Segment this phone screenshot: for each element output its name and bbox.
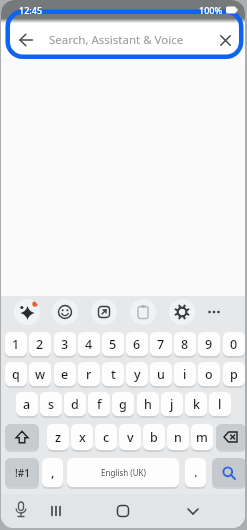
button[interactable]: b bbox=[143, 424, 165, 450]
button[interactable]: 5 bbox=[102, 332, 124, 356]
staticText: d bbox=[71, 396, 79, 413]
staticText: w bbox=[35, 366, 46, 383]
button[interactable]: d bbox=[64, 392, 86, 416]
staticText: !#1 bbox=[15, 466, 30, 480]
staticText: y bbox=[134, 366, 141, 383]
staticText: v bbox=[127, 429, 134, 446]
staticText: j bbox=[170, 396, 174, 413]
staticText: h bbox=[144, 396, 152, 413]
button[interactable] bbox=[44, 499, 68, 523]
button[interactable]: q bbox=[5, 362, 27, 386]
staticText: 7 bbox=[157, 336, 165, 353]
button[interactable] bbox=[201, 299, 227, 325]
staticText: 9 bbox=[205, 336, 213, 353]
button[interactable]: g bbox=[112, 392, 134, 416]
staticText: b bbox=[150, 429, 158, 446]
button[interactable]: z bbox=[47, 424, 69, 450]
button[interactable]: t bbox=[102, 362, 124, 386]
button[interactable]: x bbox=[71, 424, 93, 450]
staticText: English (UK) bbox=[101, 467, 146, 478]
button[interactable]: Search, Assistant & Voice bbox=[49, 23, 205, 57]
staticText: s bbox=[48, 396, 55, 413]
staticText: t bbox=[111, 366, 116, 383]
button[interactable]: f bbox=[88, 392, 110, 416]
button[interactable] bbox=[212, 458, 245, 487]
button[interactable]: u bbox=[150, 362, 172, 386]
button[interactable]: 8 bbox=[174, 332, 196, 356]
button[interactable]: 3 bbox=[54, 332, 76, 356]
staticText: 12:45 bbox=[19, 4, 43, 16]
button[interactable]: 4 bbox=[78, 332, 100, 356]
button[interactable]: s bbox=[40, 392, 62, 416]
button[interactable]: v bbox=[119, 424, 141, 450]
staticText: r bbox=[86, 366, 92, 383]
button[interactable] bbox=[91, 299, 117, 325]
button[interactable] bbox=[181, 499, 205, 523]
staticText: 6 bbox=[133, 336, 141, 353]
staticText: n bbox=[174, 429, 182, 446]
button[interactable]: 1 bbox=[5, 332, 27, 356]
button[interactable]: r bbox=[78, 362, 100, 386]
staticText: 1 bbox=[12, 336, 20, 353]
staticText: m bbox=[196, 429, 208, 446]
staticText: Search, Assistant & Voice bbox=[49, 32, 184, 48]
button[interactable]: 0 bbox=[223, 332, 245, 356]
button[interactable] bbox=[9, 498, 33, 522]
button[interactable]: a bbox=[16, 392, 38, 416]
button[interactable] bbox=[205, 23, 245, 57]
button[interactable]: i bbox=[174, 362, 196, 386]
button[interactable]: m bbox=[191, 424, 213, 450]
staticText: e bbox=[61, 366, 69, 383]
button[interactable] bbox=[14, 299, 40, 325]
button[interactable]: p bbox=[223, 362, 245, 386]
staticText: . bbox=[194, 464, 198, 481]
staticText: 100% bbox=[199, 4, 223, 16]
button[interactable]: w bbox=[29, 362, 51, 386]
staticText: f bbox=[97, 396, 102, 413]
button[interactable]: 7 bbox=[150, 332, 172, 356]
button[interactable]: 9 bbox=[198, 332, 220, 356]
staticText: c bbox=[103, 429, 110, 446]
staticText: x bbox=[79, 429, 86, 446]
button[interactable] bbox=[9, 23, 43, 57]
button[interactable] bbox=[52, 299, 78, 325]
staticText: i bbox=[183, 366, 187, 383]
staticText: 0 bbox=[230, 336, 238, 353]
staticText: 8 bbox=[181, 336, 189, 353]
staticText: q bbox=[12, 366, 20, 383]
button[interactable]: c bbox=[95, 424, 117, 450]
staticText: a bbox=[23, 396, 31, 413]
staticText: g bbox=[119, 396, 127, 413]
button[interactable] bbox=[216, 424, 245, 450]
button[interactable]: 2 bbox=[29, 332, 51, 356]
button[interactable]: k bbox=[185, 392, 207, 416]
staticText: z bbox=[55, 429, 61, 446]
staticText: k bbox=[193, 396, 200, 413]
staticText: 5 bbox=[109, 336, 117, 353]
button[interactable] bbox=[130, 299, 156, 325]
button[interactable]: y bbox=[126, 362, 148, 386]
button[interactable]: 6 bbox=[126, 332, 148, 356]
staticText: 3 bbox=[61, 336, 69, 353]
button[interactable]: English (UK) bbox=[67, 458, 179, 487]
button[interactable]: , bbox=[42, 458, 63, 487]
button[interactable]: h bbox=[137, 392, 159, 416]
staticText: p bbox=[230, 366, 238, 383]
button[interactable]: e bbox=[54, 362, 76, 386]
button[interactable] bbox=[169, 299, 195, 325]
staticText: , bbox=[51, 464, 55, 481]
button[interactable]: . bbox=[185, 458, 206, 487]
button[interactable]: j bbox=[161, 392, 183, 416]
staticText: 2 bbox=[36, 336, 44, 353]
button[interactable]: o bbox=[198, 362, 220, 386]
button[interactable] bbox=[111, 499, 135, 523]
staticText: u bbox=[157, 366, 165, 383]
button[interactable]: !#1 bbox=[5, 458, 39, 487]
button[interactable]: n bbox=[167, 424, 189, 450]
staticText: 4 bbox=[85, 336, 93, 353]
button[interactable]: l bbox=[209, 392, 231, 416]
staticText: o bbox=[205, 366, 213, 383]
staticText: l bbox=[218, 396, 222, 413]
button[interactable] bbox=[5, 424, 39, 450]
